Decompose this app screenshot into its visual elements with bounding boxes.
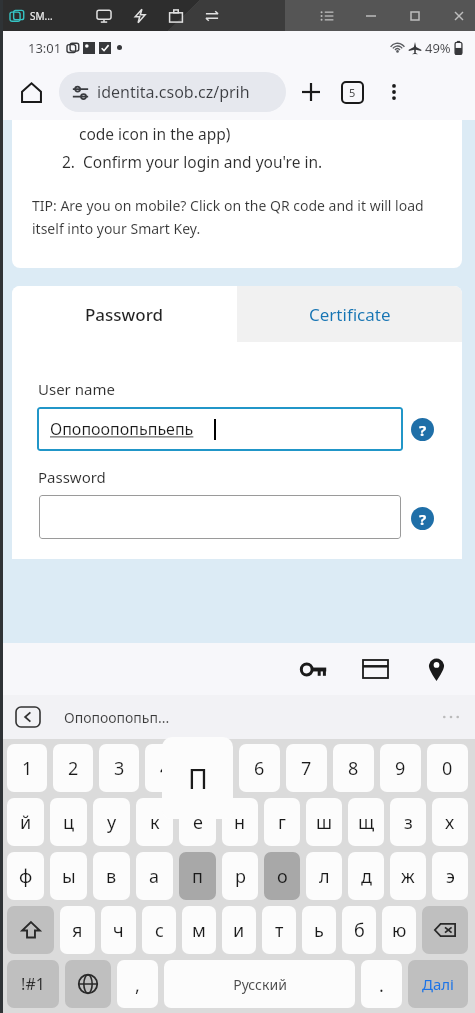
button[interactable]: Home — [14, 75, 48, 109]
button[interactable]: Minimize — [363, 8, 379, 24]
button[interactable]: Power — [132, 8, 148, 24]
button[interactable]: х — [432, 798, 468, 846]
button[interactable] — [39, 495, 401, 539]
button[interactable]: н — [222, 798, 258, 846]
button[interactable]: 2 — [53, 744, 93, 792]
button[interactable]: More options — [379, 77, 409, 107]
button[interactable]: ы — [50, 852, 87, 900]
button[interactable]: 7 — [286, 744, 327, 792]
button[interactable]: Далі — [408, 960, 468, 1008]
button[interactable]: и — [222, 906, 256, 954]
button[interactable]: л — [306, 852, 342, 900]
button[interactable]: щ — [348, 798, 384, 846]
button[interactable]: 9 — [380, 744, 421, 792]
staticText: П — [188, 760, 208, 797]
button[interactable]: р — [222, 852, 258, 900]
button[interactable]: 1 — [7, 744, 47, 792]
button[interactable]: а — [136, 852, 173, 900]
staticText: и — [233, 918, 245, 943]
staticText: э — [446, 864, 455, 889]
button[interactable]: к — [136, 798, 173, 846]
staticText: я — [72, 918, 83, 943]
button[interactable]: Payment cards — [358, 652, 392, 686]
button[interactable]: Display — [96, 8, 112, 24]
button[interactable]: List — [319, 8, 335, 24]
button[interactable]: Shift — [7, 906, 54, 954]
staticText: 0 — [442, 756, 453, 781]
button[interactable]: у — [93, 798, 130, 846]
button[interactable]: 3 — [99, 744, 139, 792]
staticText: ь — [314, 918, 324, 943]
button[interactable]: ф — [7, 852, 44, 900]
button[interactable]: 4 — [145, 744, 186, 792]
button[interactable]: ц — [50, 798, 87, 846]
button[interactable]: Transfer — [204, 8, 220, 24]
staticText: ж — [401, 864, 415, 889]
staticText: Опопоопопьпьепь — [50, 418, 194, 440]
staticText: м — [192, 918, 206, 943]
staticText: 2 — [68, 756, 79, 781]
staticText: Password — [85, 303, 164, 326]
button[interactable]: м — [182, 906, 216, 954]
button[interactable]: ш — [306, 798, 342, 846]
staticText: т — [275, 918, 284, 943]
button[interactable]: Previous suggestion — [16, 707, 40, 727]
button[interactable]: ь — [302, 906, 336, 954]
staticText: о — [277, 864, 288, 889]
staticText: 7 — [301, 756, 312, 781]
button[interactable]: Work — [168, 8, 184, 24]
button[interactable]: с — [142, 906, 176, 954]
button[interactable]: о — [264, 852, 300, 900]
button[interactable]: й — [7, 798, 44, 846]
button[interactable]: Русский — [164, 960, 355, 1008]
staticText: ю — [392, 918, 407, 943]
button[interactable]: 5 — [192, 744, 233, 792]
button[interactable]: Help — [411, 507, 434, 530]
button[interactable]: !#1 — [7, 960, 59, 1008]
staticText: Confirm your login and you're in. — [83, 151, 323, 172]
button[interactable]: Password — [12, 286, 237, 342]
button[interactable]: Passwords — [297, 652, 331, 686]
staticText: Certificate — [309, 303, 391, 326]
button[interactable]: я — [60, 906, 95, 954]
button[interactable]: Certificate — [237, 286, 462, 342]
button[interactable]: Close — [451, 8, 467, 24]
button[interactable]: , — [117, 960, 158, 1008]
button[interactable]: з — [390, 798, 426, 846]
button[interactable]: . — [361, 960, 402, 1008]
staticText: 4 — [160, 756, 171, 781]
staticText: ч — [113, 918, 124, 943]
staticText: й — [20, 810, 32, 835]
button[interactable]: 8 — [333, 744, 374, 792]
staticText: 1 — [22, 756, 33, 781]
button[interactable]: г — [264, 798, 300, 846]
staticText: с — [155, 918, 164, 943]
staticText: Далі — [422, 974, 454, 994]
staticText: !#1 — [21, 973, 45, 995]
button[interactable]: э — [432, 852, 468, 900]
button[interactable]: в — [93, 852, 130, 900]
button[interactable]: Опопоопопьпьепь — [37, 407, 403, 451]
staticText: щ — [358, 810, 375, 835]
staticText: 9 — [395, 756, 406, 781]
button[interactable]: ч — [101, 906, 136, 954]
button[interactable]: ю — [382, 906, 416, 954]
button[interactable]: 0 — [427, 744, 468, 792]
button[interactable]: б — [342, 906, 376, 954]
button[interactable]: 6 — [239, 744, 280, 792]
button[interactable]: identita.csob.cz/prih — [59, 72, 286, 112]
button[interactable]: п — [179, 852, 216, 900]
button[interactable]: Maximize — [407, 8, 423, 24]
button[interactable]: д — [348, 852, 384, 900]
button[interactable]: ж — [390, 852, 426, 900]
staticText: TIP: Are you on mobile? Click on the QR … — [32, 196, 444, 238]
button[interactable]: т — [262, 906, 296, 954]
button[interactable]: Backspace — [422, 906, 468, 954]
button[interactable]: New tab — [294, 75, 328, 109]
button[interactable]: Change language — [65, 960, 111, 1008]
staticText: у — [107, 810, 117, 835]
button[interactable]: Addresses — [419, 652, 453, 686]
button[interactable]: Tabs: 5 — [342, 82, 363, 103]
button[interactable]: е — [179, 798, 216, 846]
button[interactable]: Help — [411, 418, 434, 441]
